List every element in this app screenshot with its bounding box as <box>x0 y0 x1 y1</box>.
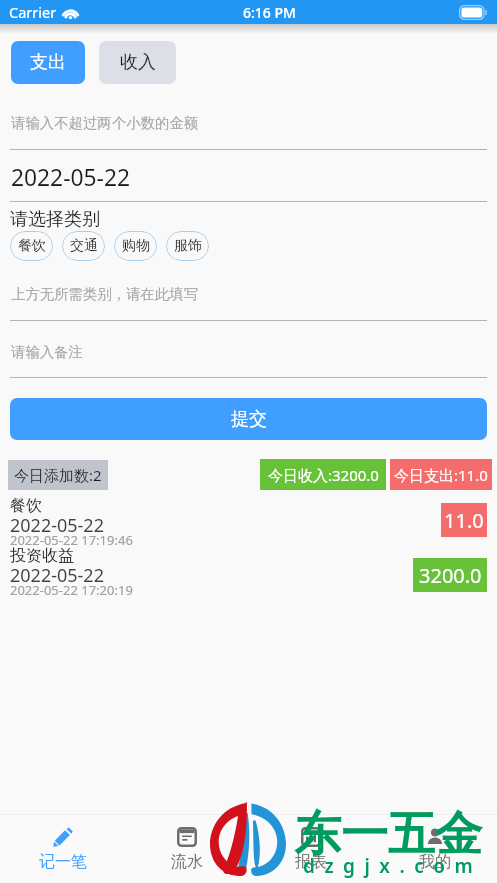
button[interactable]: 今日收入:3200.0 <box>260 459 386 490</box>
staticText: 报表 <box>295 852 327 872</box>
staticText: 交通 <box>70 237 98 255</box>
staticText: 3200.0 <box>419 562 482 589</box>
staticText: 购物 <box>122 237 150 255</box>
button[interactable]: 报表 <box>249 815 373 883</box>
staticText: 东一五金 <box>294 805 482 864</box>
staticText: 2022-05-22 <box>10 513 104 538</box>
button[interactable] <box>0 152 497 201</box>
staticText: 餐饮 <box>10 496 42 516</box>
staticText: 投资收益 <box>10 546 74 566</box>
staticText: Carrier <box>9 2 57 22</box>
staticText: 提交 <box>231 408 267 431</box>
button[interactable]: 收入 <box>99 41 176 84</box>
staticText: 今日收入:3200.0 <box>268 465 379 485</box>
staticText: 请选择类别 <box>10 208 100 231</box>
button[interactable]: 今日支出:11.0 <box>390 459 492 490</box>
staticText: 2022-05-22 17:19:46 <box>10 531 133 549</box>
button[interactable]: 服饰 <box>166 231 209 261</box>
staticText: dzgjx.com <box>303 853 483 879</box>
staticText: 11.0 <box>444 507 484 534</box>
button[interactable]: 我的 <box>373 815 497 883</box>
staticText: 收入 <box>120 51 156 74</box>
staticText: 2022-05-22 <box>11 162 130 193</box>
staticText: 2022-05-22 17:20:19 <box>10 581 133 599</box>
button[interactable]: 交通 <box>62 231 105 261</box>
staticText: 今日支出:11.0 <box>394 465 488 485</box>
button[interactable]: 3200.0 <box>413 558 487 592</box>
button[interactable]: 购物 <box>114 231 157 261</box>
button[interactable] <box>0 272 497 320</box>
button[interactable] <box>0 546 497 598</box>
button[interactable] <box>0 100 497 150</box>
staticText: 服饰 <box>174 237 202 255</box>
button[interactable]: 11.0 <box>441 503 487 537</box>
staticText: 我的 <box>419 852 451 872</box>
staticText: 请输入备注 <box>11 343 83 361</box>
button[interactable]: 提交 <box>10 398 487 440</box>
staticText: 6:16 PM <box>243 3 296 22</box>
staticText: 上方无所需类别，请在此填写 <box>11 285 199 303</box>
button[interactable]: 记一笔 <box>0 815 125 883</box>
button[interactable]: 今日添加数:2 <box>8 460 108 490</box>
staticText: 流水 <box>171 852 203 872</box>
staticText: 记一笔 <box>39 852 87 872</box>
button[interactable] <box>0 495 497 547</box>
staticText: 今日添加数:2 <box>14 465 102 485</box>
button[interactable]: 流水 <box>125 815 249 883</box>
button[interactable] <box>0 330 497 377</box>
staticText: 餐饮 <box>18 237 46 255</box>
button[interactable]: 餐饮 <box>10 231 53 261</box>
staticText: 请输入不超过两个小数的金额 <box>11 114 199 132</box>
staticText: 2022-05-22 <box>10 563 104 588</box>
button[interactable]: 支出 <box>11 41 85 84</box>
staticText: 支出 <box>30 51 66 74</box>
